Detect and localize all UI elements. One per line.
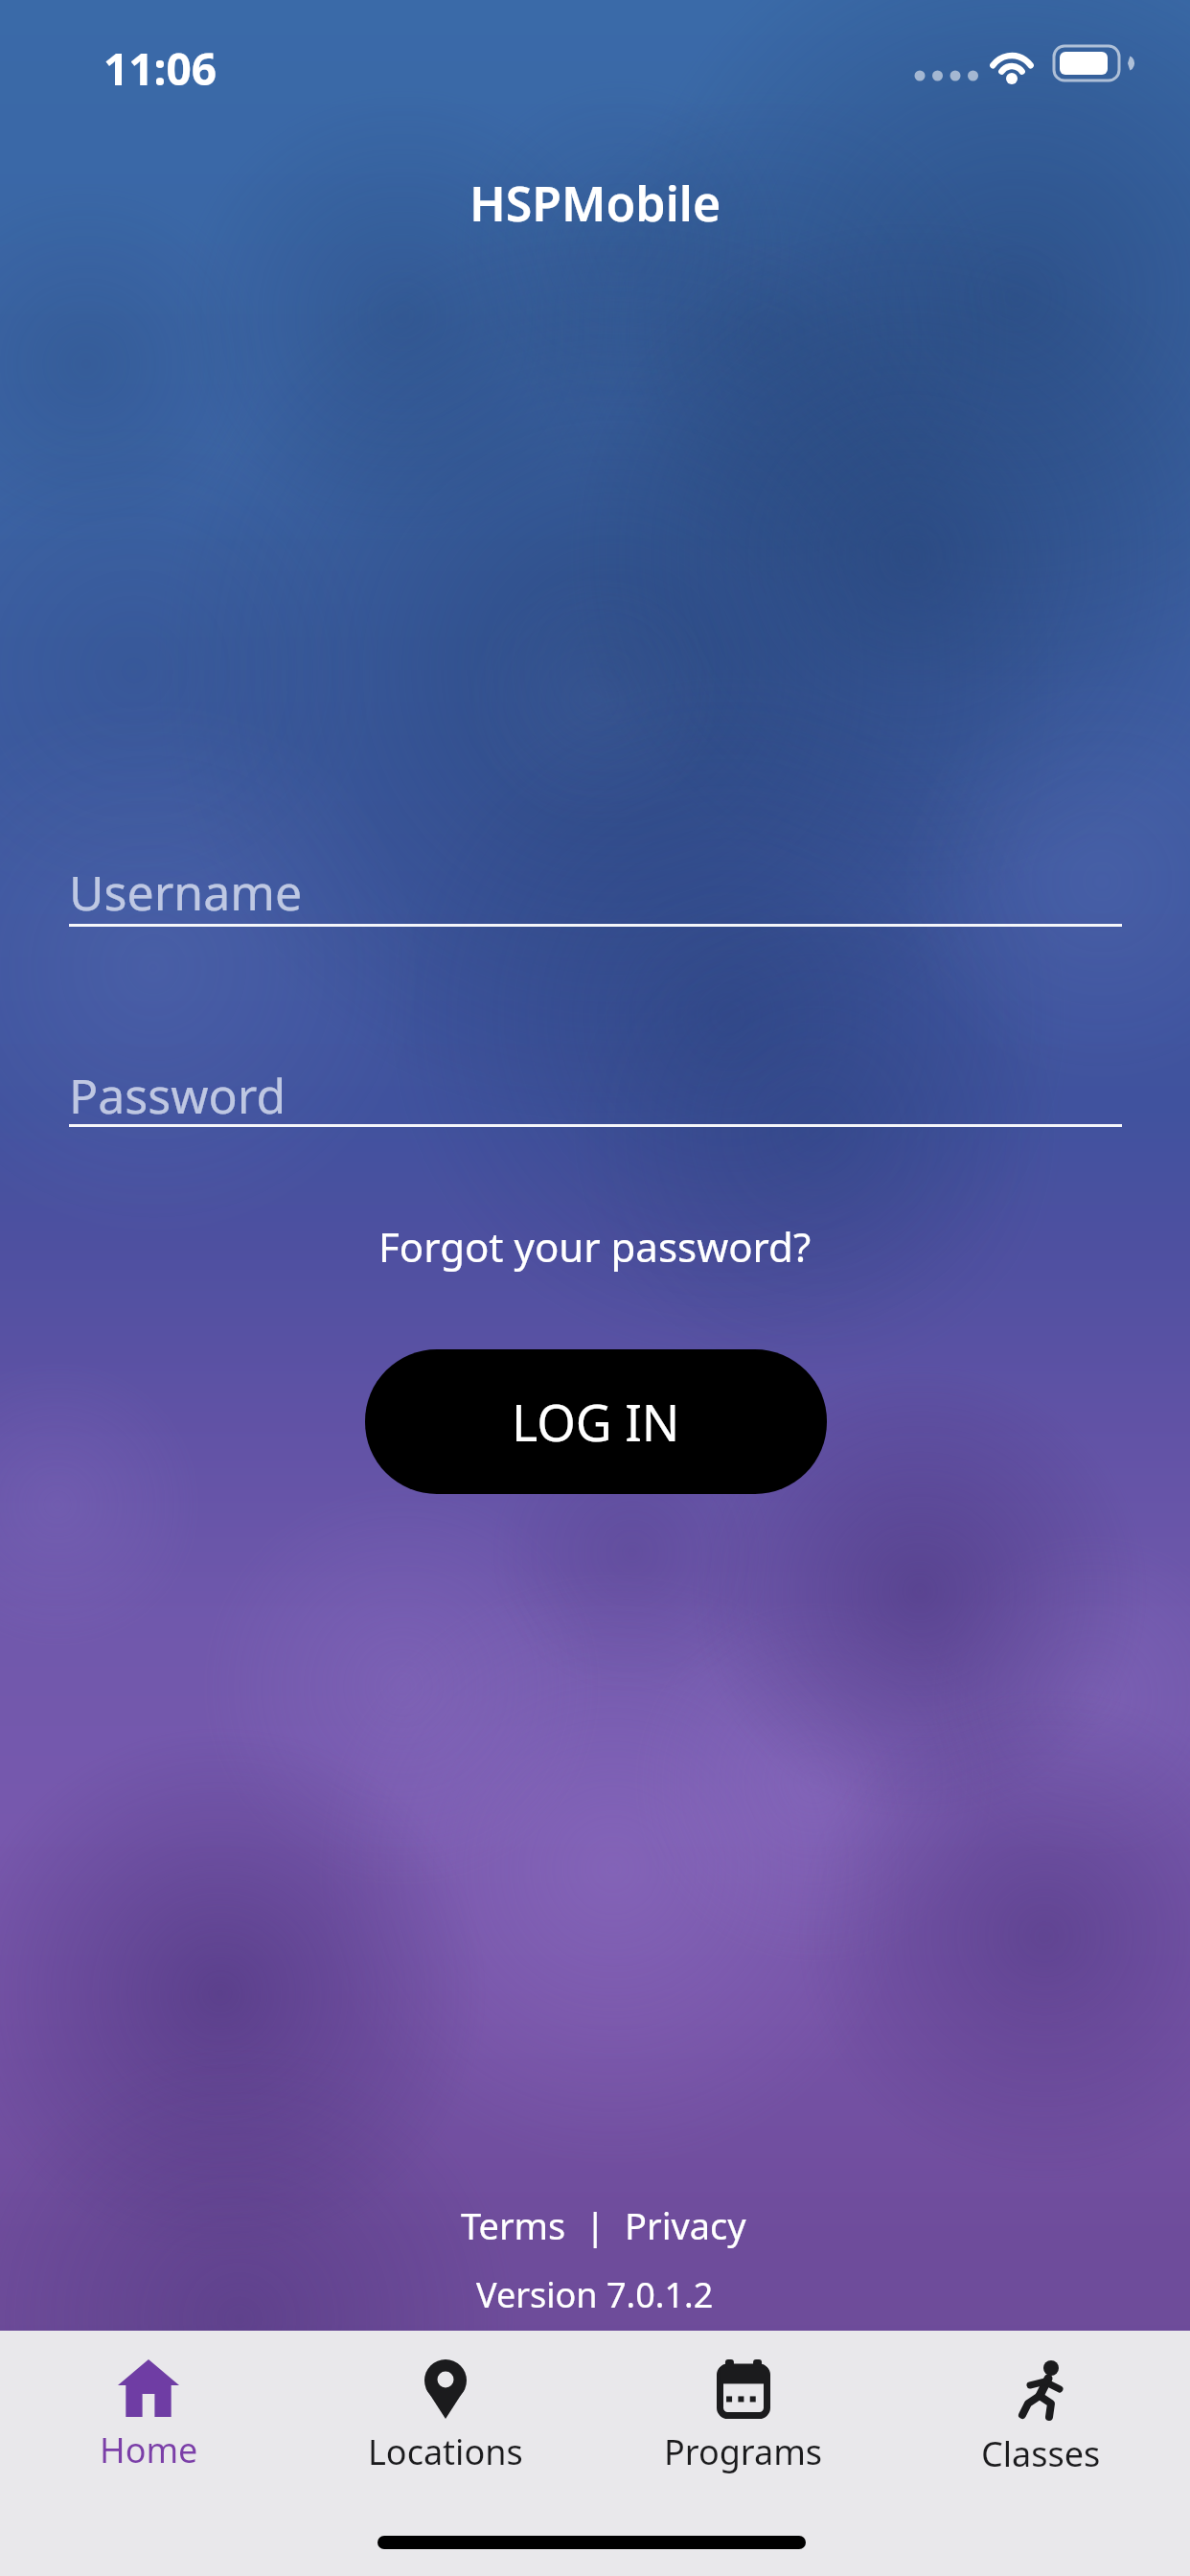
button[interactable]: Password [69, 1061, 1122, 1130]
staticText: Programs [664, 2428, 823, 2475]
button[interactable]: Username [69, 858, 1122, 927]
button[interactable]: Terms [461, 2200, 566, 2250]
staticText: Locations [368, 2428, 523, 2475]
staticText: LOG IN [512, 1388, 680, 1456]
staticText: | [566, 2200, 625, 2250]
staticText: Username [69, 860, 303, 925]
button[interactable]: Classes [892, 2331, 1190, 2477]
staticText: Password [69, 1063, 286, 1128]
button[interactable]: LOG IN [365, 1349, 827, 1494]
staticText: Classes [981, 2430, 1101, 2477]
button[interactable]: Locations [297, 2331, 594, 2475]
button[interactable]: Forgot your password? [378, 1219, 812, 1274]
staticText: 11:06 [103, 38, 217, 99]
staticText: Version 7.0.1.2 [476, 2271, 714, 2318]
button[interactable]: Privacy [625, 2200, 746, 2250]
button[interactable]: Programs [594, 2331, 892, 2475]
button[interactable]: Home [0, 2331, 297, 2473]
staticText: HSPMobile [469, 171, 721, 236]
staticText: Home [100, 2426, 198, 2473]
